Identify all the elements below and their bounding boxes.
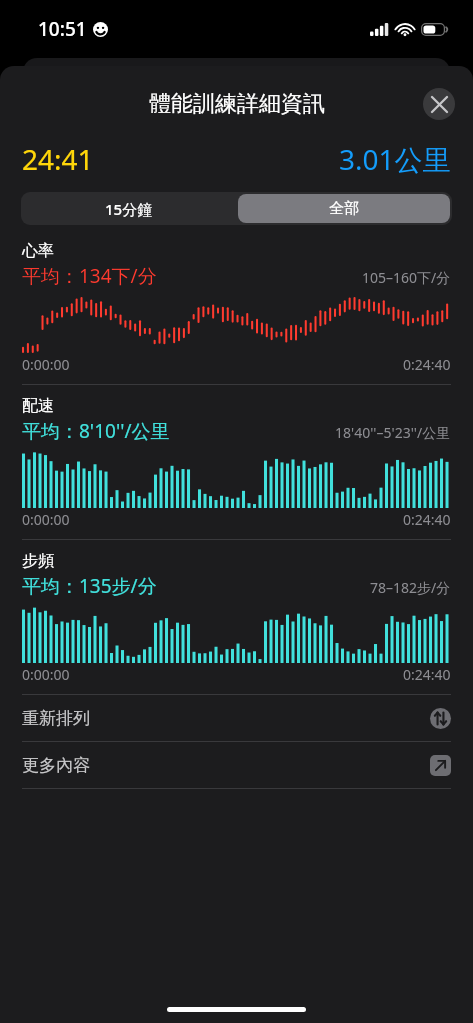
staticText: 18'40''–5'23''/公里 [335,423,451,442]
staticText: 重新排列 [22,708,90,729]
staticText: 配速 [22,396,54,416]
staticText: 78–182步/分 [370,578,451,597]
staticText: 0:00:00 [22,510,70,529]
staticText: 3.01公里 [339,140,451,178]
staticText: 全部 [329,199,359,218]
staticText: 0:00:00 [22,665,70,684]
button[interactable]: 重新排列 [0,695,473,741]
staticText: 0:24:40 [403,355,451,374]
staticText: 步頻 [22,551,54,571]
staticText: 0:24:40 [403,510,451,529]
button[interactable]: 更多內容 [0,742,473,788]
staticText: 0:00:00 [22,355,70,374]
staticText: 0:24:40 [403,665,451,684]
staticText: 更多內容 [22,755,90,776]
staticText: 心率 [22,241,54,261]
staticText: 平均：135步/分 [22,573,157,599]
other: More content [430,755,451,776]
staticText: 24:41 [22,140,94,178]
staticText: 15分鐘 [105,199,153,219]
staticText: 體能訓練詳細資訊 [149,90,325,118]
button[interactable]: 15分鐘 [21,192,236,225]
staticText: 105–160下/分 [362,268,451,287]
button[interactable]: Close [423,88,455,120]
button[interactable]: 全部 [238,194,450,223]
staticText: 平均：8'10''/公里 [22,418,170,444]
other: Reorder [430,708,451,729]
staticText: 平均：134下/分 [22,263,157,289]
staticText: 10:51 [38,16,87,42]
